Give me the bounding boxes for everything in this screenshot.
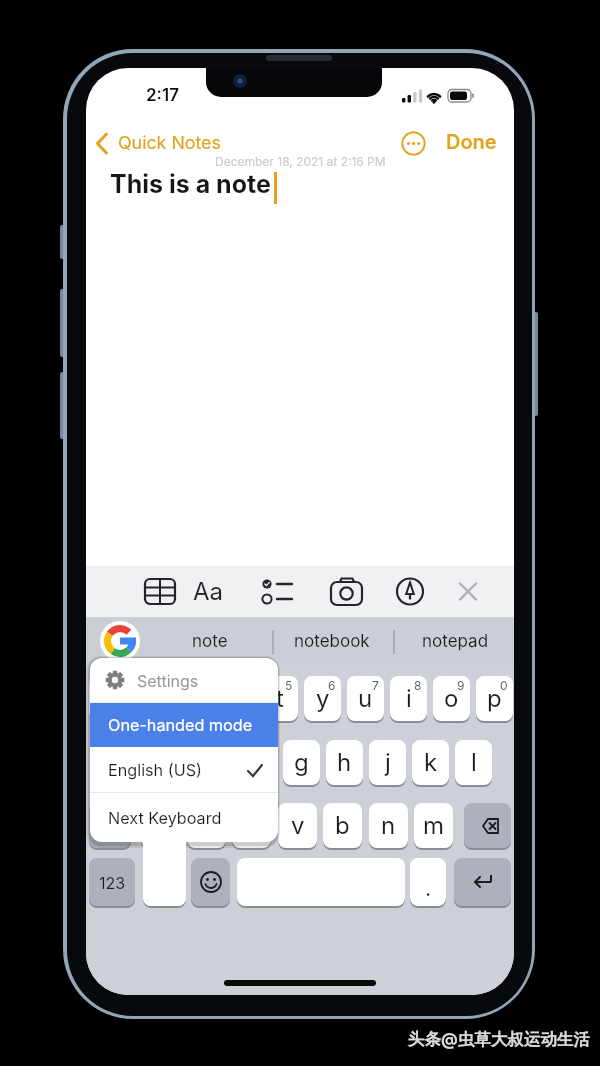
button[interactable]: w — [132, 676, 169, 721]
staticText: x — [200, 811, 214, 840]
button[interactable]: u — [347, 676, 384, 721]
staticText: 5 — [285, 678, 293, 693]
button[interactable]: v — [278, 803, 317, 848]
button[interactable]: English (US) — [90, 747, 278, 792]
button[interactable]: m — [414, 803, 453, 848]
staticText: z — [154, 811, 168, 840]
button[interactable]: q — [89, 676, 126, 721]
staticText: h — [337, 748, 352, 777]
staticText: 2 — [156, 678, 164, 693]
staticText: Done — [446, 130, 497, 154]
button[interactable]: . — [410, 858, 446, 906]
button[interactable]: b — [323, 803, 362, 848]
staticText: 8 — [414, 678, 422, 693]
staticText: f — [254, 748, 263, 777]
button[interactable]: l — [455, 740, 492, 785]
button[interactable]: One-handed mode — [90, 703, 278, 747]
button[interactable]: note — [160, 621, 260, 661]
staticText: note — [192, 631, 228, 652]
button[interactable]: e — [175, 676, 212, 721]
button[interactable] — [401, 131, 426, 156]
staticText: y — [316, 684, 330, 713]
button[interactable]: x — [187, 803, 226, 848]
button[interactable]: Done — [446, 130, 497, 154]
staticText: 7 — [372, 678, 379, 693]
staticText: n — [381, 811, 396, 840]
button[interactable]: h — [326, 740, 363, 785]
button[interactable] — [191, 858, 230, 906]
button[interactable]: g — [283, 740, 320, 785]
button[interactable]: Aa — [186, 566, 230, 617]
button[interactable]: a — [111, 740, 148, 785]
staticText: m — [423, 811, 445, 840]
button[interactable]: t — [261, 676, 298, 721]
staticText: k — [424, 748, 438, 777]
staticText: notebook — [294, 631, 370, 652]
staticText: Aa — [193, 577, 224, 606]
staticText: q — [100, 684, 115, 713]
button[interactable]: notebook — [282, 621, 382, 661]
staticText: Quick Notes — [118, 132, 221, 154]
button[interactable]: k — [412, 740, 449, 785]
staticText: b — [335, 811, 350, 840]
button[interactable]: o — [433, 676, 470, 721]
button[interactable]: 123 — [89, 858, 135, 906]
staticText: 1 — [116, 678, 121, 693]
staticText: 9 — [457, 678, 465, 693]
staticText: 123 — [99, 873, 126, 892]
button[interactable]: Quick Notes — [118, 132, 221, 154]
button[interactable]: Settings — [90, 658, 278, 702]
button[interactable]: j — [369, 740, 406, 785]
staticText: English (US) — [108, 760, 202, 780]
staticText: 2:17 — [146, 85, 179, 106]
staticText: . — [425, 875, 432, 902]
button[interactable] — [454, 858, 511, 906]
button[interactable] — [94, 132, 112, 156]
button[interactable]: r — [218, 676, 255, 721]
staticText: p — [487, 684, 502, 713]
staticText: 6 — [328, 678, 336, 693]
staticText: e — [187, 684, 201, 713]
button[interactable] — [143, 858, 186, 906]
button[interactable]: Next Keyboard — [90, 793, 278, 842]
button[interactable]: d — [197, 740, 234, 785]
staticText: w — [141, 684, 161, 713]
button[interactable] — [89, 803, 131, 848]
staticText: l — [471, 748, 477, 777]
staticText: i — [406, 684, 412, 713]
staticText: u — [358, 684, 373, 713]
button[interactable]: c — [232, 803, 271, 848]
staticText: v — [291, 811, 305, 840]
staticText: t — [276, 684, 284, 713]
button[interactable] — [237, 858, 405, 906]
button[interactable]: p — [476, 676, 513, 721]
button[interactable]: z — [141, 803, 180, 848]
staticText: r — [232, 684, 242, 713]
staticText: Next Keyboard — [108, 808, 222, 828]
staticText: One-handed mode — [108, 715, 253, 735]
staticText: j — [385, 748, 391, 777]
staticText: a — [123, 748, 137, 777]
staticText: 头条@虫草大叔运动生活 — [408, 1029, 590, 1050]
button[interactable]: s — [154, 740, 191, 785]
staticText: s — [166, 748, 179, 777]
staticText: g — [294, 748, 309, 777]
button[interactable]: y — [304, 676, 341, 721]
staticText: 0 — [500, 678, 508, 693]
staticText: Settings — [137, 671, 199, 690]
staticText: o — [444, 684, 459, 713]
button[interactable] — [464, 803, 511, 848]
staticText: December 18, 2021 at 2:16 PM — [215, 154, 386, 169]
button[interactable]: i — [390, 676, 427, 721]
staticText: This is a note — [110, 169, 271, 199]
button[interactable]: notepad — [404, 621, 506, 661]
staticText: notepad — [422, 631, 489, 652]
button[interactable]: n — [369, 803, 408, 848]
button[interactable]: f — [240, 740, 277, 785]
